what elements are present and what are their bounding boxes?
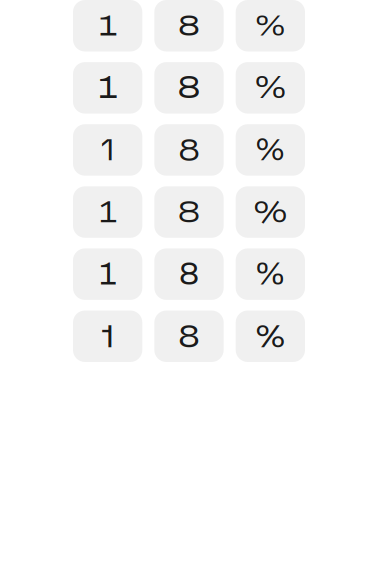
staticText: 8 [177,191,200,233]
staticText: 8 [177,71,200,105]
staticText: 1 [101,131,115,169]
staticText: 1 [101,318,115,355]
staticText: 8 [178,131,199,169]
staticText: % [255,131,285,169]
staticText: % [253,191,288,233]
staticText: 8 [179,257,199,291]
staticText: 1 [98,71,118,105]
staticText: % [254,71,286,105]
staticText: 8 [178,10,200,42]
staticText: 1 [98,10,117,42]
staticText: 1 [99,257,117,291]
staticText: 8 [178,318,200,355]
staticText: % [255,257,286,291]
staticText: % [255,318,285,355]
staticText: 1 [96,191,119,233]
staticText: % [255,10,286,42]
